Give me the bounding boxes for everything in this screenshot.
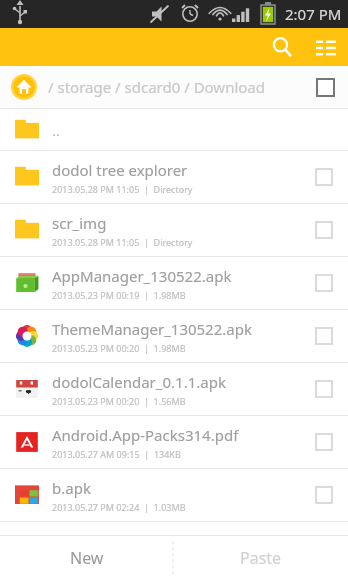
button[interactable]: AppManager_130522.apk — [0, 257, 348, 309]
button[interactable]: Select ThemeManager_130522.apk — [302, 314, 346, 358]
button[interactable]: Select b.apk — [302, 473, 346, 517]
button[interactable]: dodolCalendar_0.1.1.apk — [0, 363, 348, 415]
staticText: Paste — [240, 547, 282, 569]
staticText: dodol tree explorer — [52, 160, 188, 180]
staticText: Android.App-Packs314.pdf — [52, 425, 239, 445]
staticText: AppManager_130522.apk — [52, 266, 232, 286]
staticText: dodolCalendar_0.1.1.apk — [52, 372, 226, 392]
staticText: .. — [52, 120, 61, 140]
button[interactable]: dodol tree explorer — [0, 151, 348, 203]
button[interactable]: More options — [304, 28, 348, 66]
button[interactable]: New — [0, 536, 173, 580]
staticText: New — [70, 547, 104, 569]
button[interactable]: Android.App-Packs314.pdf — [0, 416, 348, 468]
staticText: ThemeManager_130522.apk — [52, 319, 252, 339]
staticText: b.apk — [52, 478, 91, 498]
button[interactable]: Search — [260, 28, 304, 66]
button[interactable]: / storage / sdcard0 / Download — [0, 66, 348, 108]
button[interactable]: Select dodolCalendar_0.1.1.apk — [302, 367, 346, 411]
button[interactable]: scr_img — [0, 204, 348, 256]
staticText: 2013.05.28 PM 11:05 | Directory — [52, 183, 193, 195]
staticText: 2013.05.27 PM 02:24 | 1.03MB — [52, 501, 186, 513]
staticText: 2013.05.23 PM 00:19 | 1.98MB — [52, 289, 186, 301]
staticText: 2013.05.27 AM 09:15 | 134KB — [52, 448, 181, 460]
staticText: / storage / sdcard0 / Download — [48, 77, 304, 97]
staticText: 2013.05.23 PM 00:20 | 1.98MB — [52, 342, 186, 354]
staticText: 2:07 PM — [285, 4, 342, 24]
button[interactable]: Select all — [304, 66, 346, 108]
button[interactable]: Select scr_img — [302, 208, 346, 252]
button[interactable]: Paste — [174, 536, 348, 580]
button[interactable]: Select dodol tree explorer — [302, 155, 346, 199]
staticText: scr_img — [52, 213, 107, 233]
staticText: 2013.05.23 PM 00:20 | 1.56MB — [52, 395, 186, 407]
button[interactable]: b.apk — [0, 469, 348, 521]
button[interactable]: ThemeManager_130522.apk — [0, 310, 348, 362]
staticText: 2013.05.28 PM 11:05 | Directory — [52, 236, 193, 248]
button[interactable]: Select Android.App-Packs314.pdf — [302, 420, 346, 464]
button[interactable]: .. — [0, 109, 348, 150]
button[interactable]: Select AppManager_130522.apk — [302, 261, 346, 305]
